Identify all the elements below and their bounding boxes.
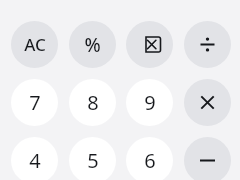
- button[interactable]: 5: [69, 137, 116, 180]
- staticText: 8: [87, 89, 99, 116]
- button[interactable]: Divide: [184, 21, 231, 68]
- staticText: %: [84, 32, 101, 58]
- staticText: 5: [87, 147, 99, 174]
- button[interactable]: 4: [11, 137, 58, 180]
- button[interactable]: AC: [11, 21, 58, 68]
- button[interactable]: 7: [11, 79, 58, 126]
- staticText: 4: [29, 147, 41, 174]
- button[interactable]: 8: [69, 79, 116, 126]
- staticText: AC: [24, 33, 46, 56]
- staticText: 6: [144, 147, 156, 174]
- button[interactable]: Multiply: [184, 79, 231, 126]
- button[interactable]: 9: [126, 79, 173, 126]
- button[interactable]: Backspace: [126, 21, 173, 68]
- button[interactable]: %: [69, 21, 116, 68]
- button[interactable]: 6: [126, 137, 173, 180]
- button[interactable]: Minus: [184, 137, 231, 180]
- staticText: 7: [29, 89, 41, 116]
- staticText: 9: [144, 89, 156, 116]
